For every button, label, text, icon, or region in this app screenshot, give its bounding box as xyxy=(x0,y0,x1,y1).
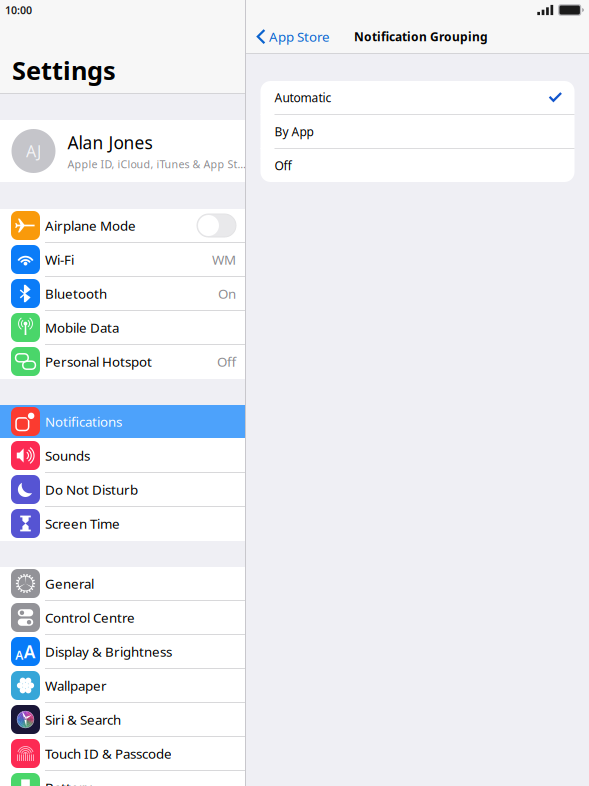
staticText: Automatic xyxy=(274,89,331,105)
staticText: AJ xyxy=(26,140,41,162)
staticText: Notification Grouping xyxy=(354,28,488,44)
button[interactable]: Personal Hotspot xyxy=(0,345,245,379)
button[interactable]: Control Centre xyxy=(0,601,245,635)
staticText: Wi-Fi xyxy=(45,251,74,268)
staticText: Off xyxy=(274,157,291,173)
staticText: On xyxy=(218,285,236,302)
button[interactable]: By App xyxy=(260,115,574,148)
button[interactable]: A xyxy=(0,635,245,669)
button[interactable]: Do Not Disturb xyxy=(0,473,245,507)
button[interactable]: Airplane Mode xyxy=(0,209,245,243)
staticText: Siri & Search xyxy=(45,711,121,728)
button[interactable]: Touch ID & Passcode xyxy=(0,737,245,771)
staticText: A xyxy=(15,647,23,663)
button[interactable]: Screen Time xyxy=(0,507,245,541)
staticText: App Store xyxy=(269,28,330,45)
staticText: Alan Jones xyxy=(67,131,152,154)
staticText: Sounds xyxy=(45,447,90,464)
staticText: Wallpaper xyxy=(45,677,107,694)
staticText: Bluetooth xyxy=(45,285,107,302)
button[interactable]: Wi-Fi xyxy=(0,243,245,277)
staticText: 10:00 xyxy=(5,3,32,17)
button[interactable]: Automatic xyxy=(260,81,574,114)
staticText: Settings xyxy=(12,53,116,87)
staticText: Do Not Disturb xyxy=(45,481,138,498)
staticText: Battery xyxy=(45,779,92,786)
staticText: Personal Hotspot xyxy=(45,353,152,370)
button[interactable]: Mobile Data xyxy=(0,311,245,345)
staticText: Apple ID, iCloud, iTunes & App St… xyxy=(67,157,245,171)
button[interactable]: Siri & Search xyxy=(0,703,245,737)
button[interactable]: Sounds xyxy=(0,439,245,473)
button[interactable]: Battery xyxy=(0,771,245,786)
staticText: Screen Time xyxy=(45,515,120,532)
button[interactable]: App Store xyxy=(246,20,338,53)
staticText: Mobile Data xyxy=(45,319,119,336)
staticText: Off xyxy=(217,353,236,370)
staticText: Control Centre xyxy=(45,609,135,626)
button[interactable]: General xyxy=(0,567,245,601)
button[interactable]: Bluetooth xyxy=(0,277,245,311)
staticText: WM xyxy=(212,251,236,268)
staticText: A xyxy=(24,640,36,663)
staticText: General xyxy=(45,575,94,592)
button[interactable]: Wallpaper xyxy=(0,669,245,703)
staticText: By App xyxy=(274,123,313,139)
button[interactable]: Notifications xyxy=(0,405,245,439)
staticText: Display & Brightness xyxy=(45,643,172,660)
staticText: Airplane Mode xyxy=(45,217,136,234)
staticText: Touch ID & Passcode xyxy=(45,745,172,762)
button[interactable]: Off xyxy=(260,149,574,182)
staticText: Notifications xyxy=(45,413,122,430)
button[interactable]: AJ xyxy=(0,120,245,182)
